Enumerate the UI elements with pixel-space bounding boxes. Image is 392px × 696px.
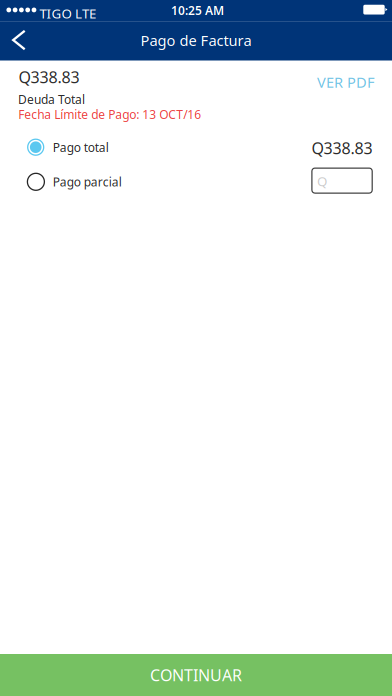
staticText: TIGO — [39, 4, 71, 22]
staticText: Fecha Límite de Pago: 13 OCT/16 — [18, 106, 201, 122]
staticText: VER PDF — [317, 72, 375, 92]
staticText: Q338.83 — [19, 66, 80, 88]
staticText: Pago total — [53, 139, 109, 155]
button[interactable]: Pago parcial — [0, 166, 392, 197]
button[interactable]: Back — [0, 22, 39, 58]
staticText: Q — [317, 172, 327, 190]
staticText: Pago de Factura — [140, 31, 251, 50]
button[interactable]: CONTINUAR — [0, 654, 392, 696]
staticText: CONTINUAR — [150, 664, 242, 686]
button[interactable]: Pago total — [0, 131, 392, 163]
button[interactable]: VER PDF — [312, 71, 375, 93]
staticText: 10:25 AM — [171, 2, 224, 18]
staticText: Deuda Total — [18, 91, 85, 107]
staticText: Pago parcial — [53, 174, 122, 190]
staticText: Q338.83 — [312, 137, 373, 159]
staticText: LTE — [75, 4, 96, 22]
